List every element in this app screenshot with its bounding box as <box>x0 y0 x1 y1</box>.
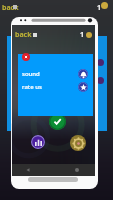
button[interactable]: Close <box>22 53 30 61</box>
button[interactable]: Home <box>73 164 81 176</box>
button[interactable]: back <box>14 30 38 40</box>
staticText: back <box>2 3 19 13</box>
staticText: 1 <box>97 3 102 13</box>
button[interactable]: Home indicator <box>28 177 78 182</box>
button[interactable]: rate us <box>18 80 93 93</box>
staticText: 1 <box>80 30 85 40</box>
button[interactable]: Coins <box>79 30 93 40</box>
staticText: back <box>15 30 32 40</box>
staticText: rate us <box>22 83 42 91</box>
staticText: sound <box>22 70 40 78</box>
button[interactable]: Settings <box>70 135 86 151</box>
button[interactable]: Confirm <box>49 113 66 130</box>
button[interactable]: Back <box>24 164 32 176</box>
button[interactable]: sound <box>18 67 93 80</box>
button[interactable]: Statistics <box>31 135 45 149</box>
